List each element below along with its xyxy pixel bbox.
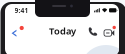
button[interactable]: Back bbox=[9, 25, 25, 38]
button[interactable]: Video call bbox=[103, 25, 117, 38]
staticText: Today bbox=[49, 25, 76, 37]
staticText: 9:41 bbox=[14, 6, 28, 15]
button[interactable]: Audio call bbox=[87, 25, 99, 38]
